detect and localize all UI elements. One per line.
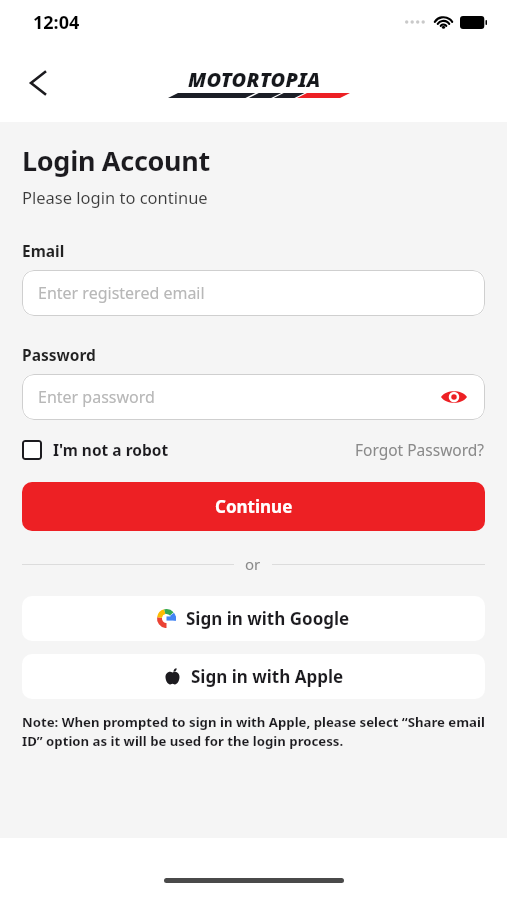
button[interactable]: Enter registered email [22,270,485,316]
button[interactable]: Sign in with Apple [22,654,485,699]
staticText: Please login to continue [22,186,208,208]
staticText: Sign in with Apple [191,665,344,688]
button[interactable]: Forgot Password? [355,439,485,460]
button[interactable]: I'm not a robot [22,439,169,460]
staticText: Forgot Password? [355,439,485,460]
staticText: Enter password [38,386,155,408]
button[interactable]: Back [16,61,60,105]
staticText: I'm not a robot [53,439,169,460]
staticText: 12:04 [33,10,80,35]
button[interactable]: Show password [439,382,469,412]
staticText: MOTORTOPIA [188,66,321,93]
staticText: Login Account [22,142,211,179]
staticText: or [245,554,261,574]
button[interactable]: Enter password [22,374,485,420]
staticText: Sign in with Google [186,607,350,630]
staticText: Note: When prompted to sign in with Appl… [22,713,485,750]
staticText: Enter registered email [38,282,205,304]
staticText: Password [22,344,96,365]
button[interactable]: Sign in with Google [22,596,485,641]
button[interactable]: Continue [22,482,485,531]
staticText: Continue [215,495,293,518]
staticText: Email [22,240,65,261]
